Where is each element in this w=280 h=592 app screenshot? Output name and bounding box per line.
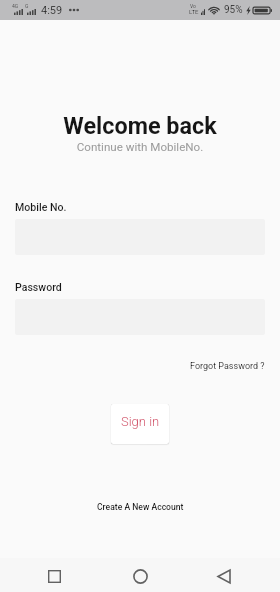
button[interactable]: Sign in (111, 404, 169, 444)
staticText: Forgot Password ? (190, 361, 265, 372)
staticText: Sign in (121, 414, 160, 429)
staticText: 95% (224, 4, 243, 16)
button[interactable]: Forgot Password ? (188, 359, 265, 374)
button[interactable]: Home (122, 559, 158, 592)
staticText: Mobile No. (15, 201, 67, 213)
staticText: 4:59 (41, 4, 63, 17)
staticText: Vo (190, 3, 196, 9)
staticText: G (25, 3, 29, 9)
staticText: LTE (189, 8, 199, 15)
staticText: Continue with MobileNo. (0, 140, 280, 154)
staticText: Create A New Account (97, 502, 184, 512)
button[interactable]: Back (206, 559, 242, 592)
staticText: 4G (12, 3, 19, 9)
staticText: Welcome back (0, 112, 280, 139)
button[interactable]: Recent apps (36, 559, 72, 592)
staticText: Password (15, 281, 62, 293)
button[interactable]: Create A New Account (93, 498, 188, 516)
